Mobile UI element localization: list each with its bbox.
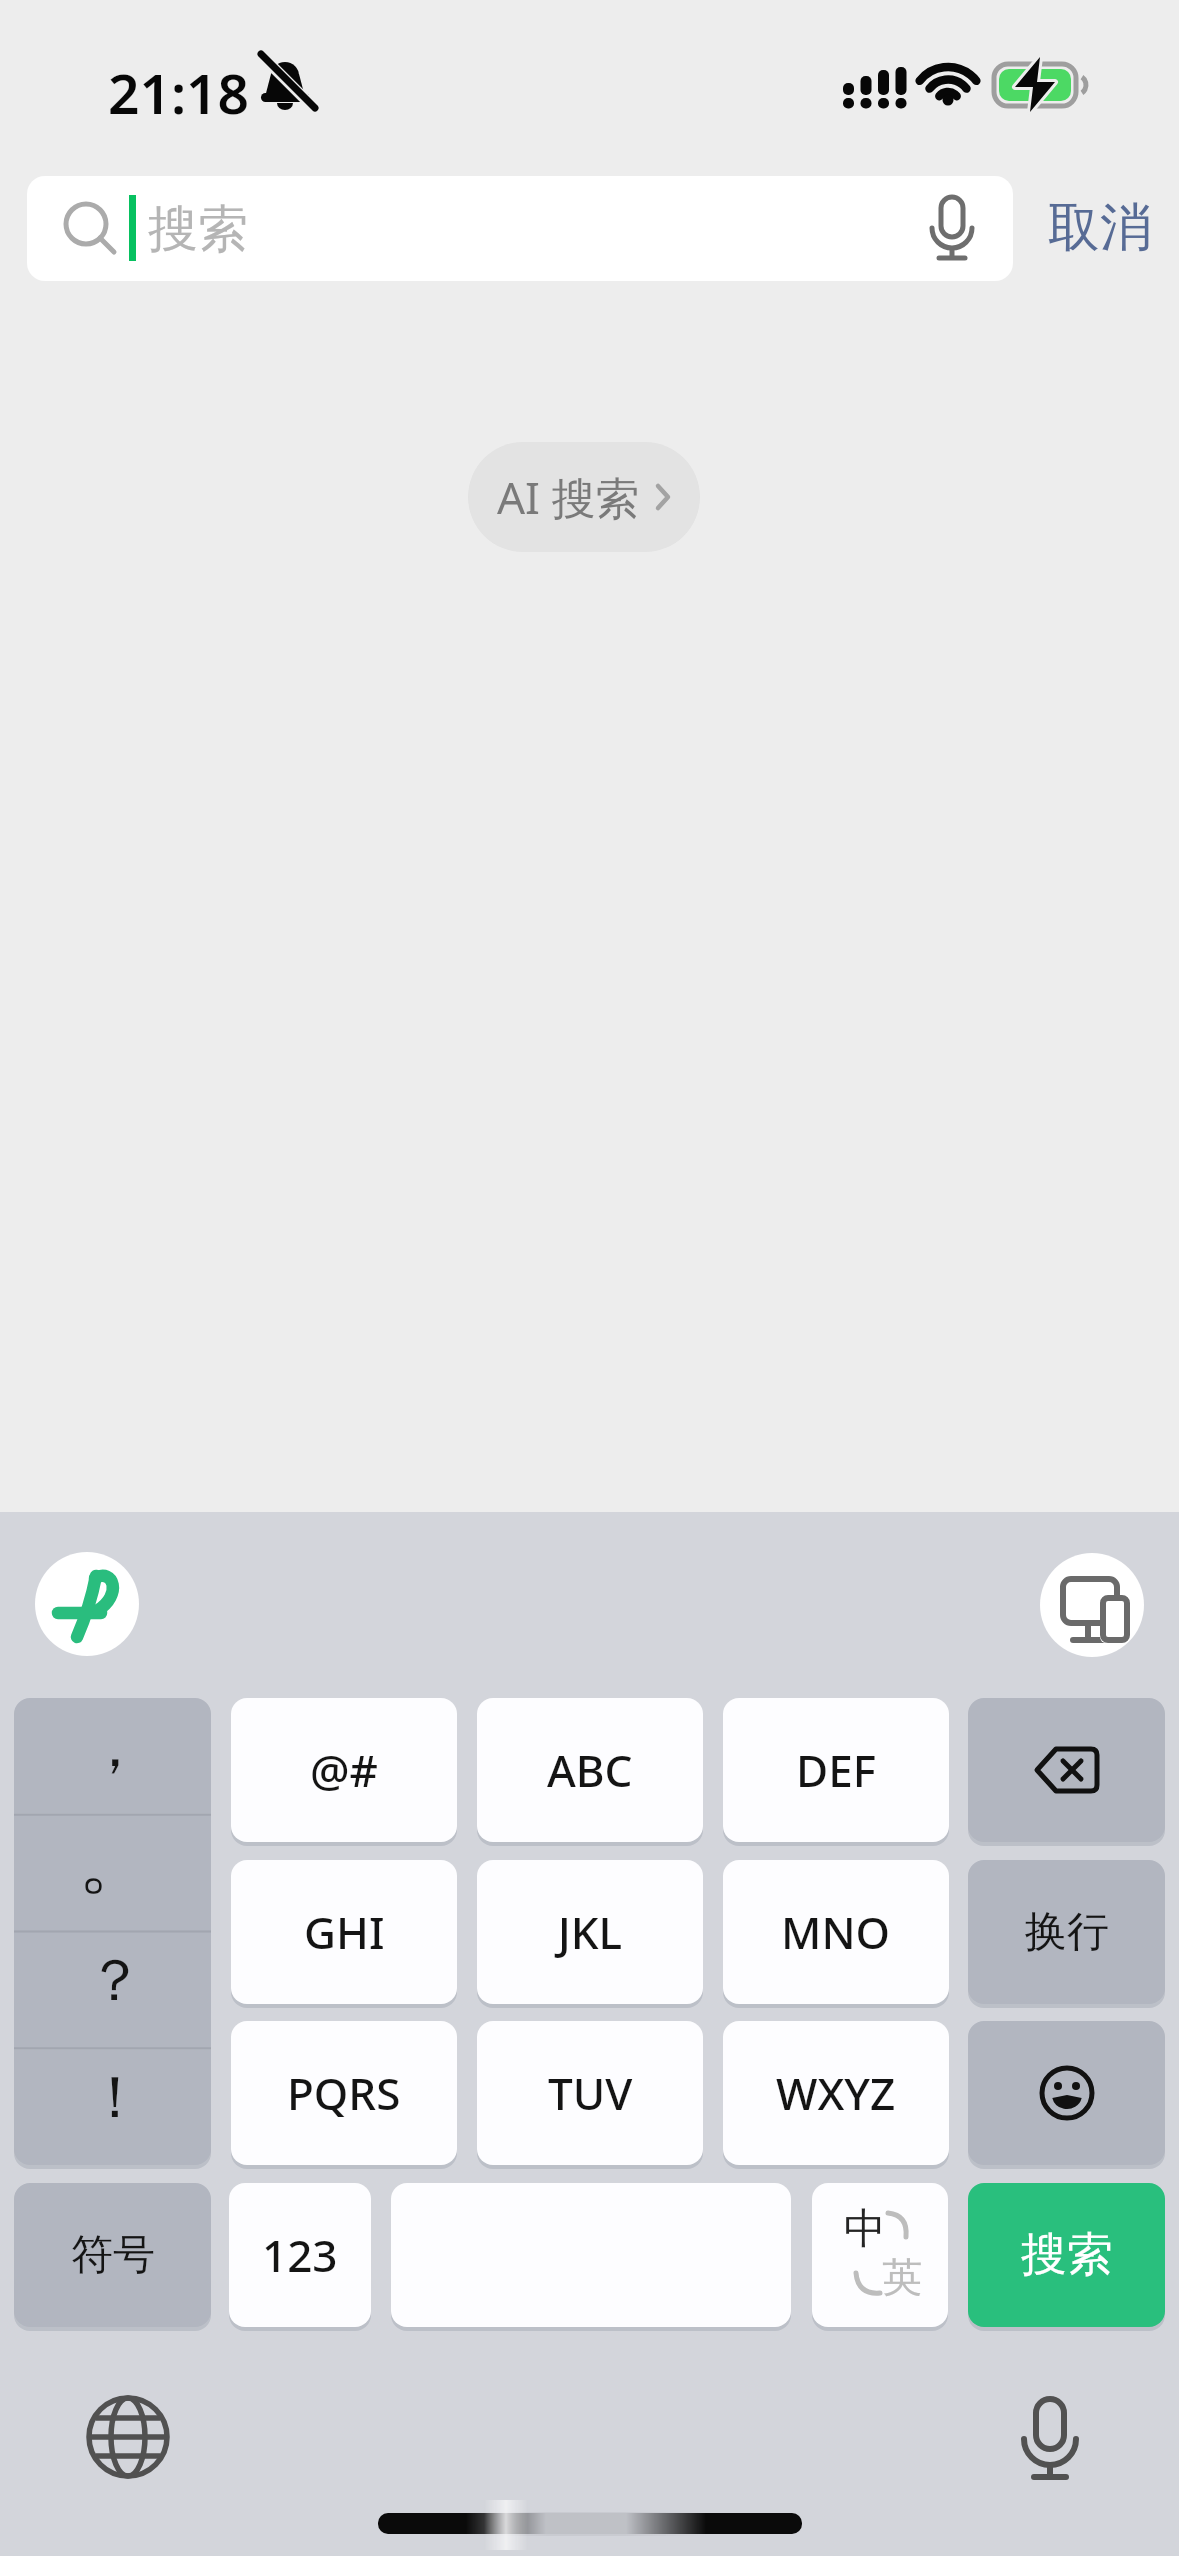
button[interactable] (391, 2183, 791, 2327)
button[interactable] (1010, 2395, 1090, 2485)
staticText: @# (310, 1740, 378, 1800)
staticText: DEF (796, 1740, 876, 1800)
staticText: PQRS (287, 2063, 401, 2123)
staticText: 21:18 (108, 55, 250, 115)
button[interactable] (35, 1552, 139, 1656)
button[interactable] (27, 176, 1013, 281)
staticText: MNO (781, 1902, 891, 1962)
staticText: 搜索 (1021, 2226, 1113, 2284)
staticText: ！ (86, 2061, 144, 2134)
staticText: 中 (844, 2203, 886, 2256)
staticText: 换行 (1025, 1906, 1109, 1959)
staticText: ， (86, 1710, 144, 1783)
staticText: 搜索 (148, 198, 248, 258)
button[interactable] (968, 1698, 1165, 1842)
button[interactable]: 符号 (14, 2183, 211, 2327)
staticText: 符号 (71, 2229, 155, 2282)
button[interactable]: 123 (229, 2183, 371, 2327)
button[interactable]: 中 (812, 2183, 948, 2327)
staticText: 取消 (1048, 195, 1152, 261)
button[interactable]: 取消 (1040, 190, 1160, 266)
staticText: GHI (304, 1902, 385, 1962)
button[interactable]: 搜索 (968, 2183, 1165, 2327)
button[interactable] (1040, 1553, 1144, 1657)
staticText: AI 搜索 (497, 467, 640, 527)
button[interactable]: TUV (477, 2021, 703, 2165)
button[interactable] (84, 2393, 172, 2481)
button[interactable]: ABC (477, 1698, 703, 1842)
staticText: ABC (547, 1740, 633, 1800)
button[interactable]: @# (231, 1698, 457, 1842)
button[interactable] (968, 2021, 1165, 2165)
button[interactable]: WXYZ (723, 2021, 949, 2165)
button[interactable]: GHI (231, 1860, 457, 2004)
staticText: ？ (86, 1944, 144, 2017)
staticText: JKL (558, 1902, 623, 1962)
button[interactable]: JKL (477, 1860, 703, 2004)
staticText: 123 (262, 2225, 338, 2285)
button[interactable]: DEF (723, 1698, 949, 1842)
staticText: 。 (78, 1815, 152, 1908)
button[interactable]: AI 搜索 (468, 442, 700, 552)
button[interactable]: MNO (723, 1860, 949, 2004)
staticText: 英 (882, 2252, 922, 2302)
button[interactable] (14, 1698, 211, 2165)
button[interactable]: PQRS (231, 2021, 457, 2165)
staticText: WXYZ (776, 2063, 896, 2123)
staticText: TUV (548, 2063, 633, 2123)
button[interactable]: 换行 (968, 1860, 1165, 2004)
